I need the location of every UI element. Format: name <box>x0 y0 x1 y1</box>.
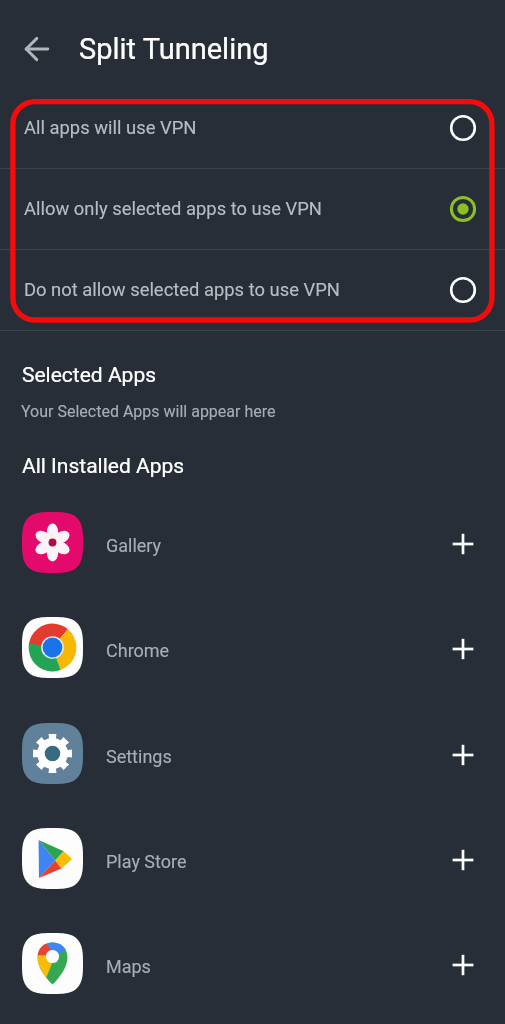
button[interactable]: Settings <box>0 701 505 806</box>
button[interactable]: Add Chrome <box>439 624 487 672</box>
button[interactable]: Add Play Store <box>439 835 487 883</box>
button[interactable]: Play Store <box>0 806 505 911</box>
button[interactable]: Maps <box>0 911 505 1016</box>
button[interactable]: Chrome <box>0 595 505 700</box>
button[interactable]: Allow only selected apps to use VPN <box>0 169 505 249</box>
button[interactable]: Do not allow selected apps to use VPN <box>0 250 505 330</box>
button[interactable]: Gallery <box>0 490 505 595</box>
staticText: All Installed Apps <box>22 454 185 479</box>
staticText: Maps <box>106 956 151 977</box>
button[interactable]: All apps will use VPN <box>0 88 505 168</box>
staticText: Selected Apps <box>22 363 157 388</box>
staticText: All apps will use VPN <box>24 117 197 139</box>
button[interactable]: Back <box>13 25 61 73</box>
button[interactable]: Add Gallery <box>439 519 487 567</box>
staticText: Gallery <box>106 535 162 556</box>
staticText: Your Selected Apps will appear here <box>21 402 276 421</box>
staticText: Split Tunneling <box>79 32 269 66</box>
button[interactable]: Add Maps <box>439 940 487 988</box>
button[interactable]: Add Settings <box>439 730 487 778</box>
staticText: Play Store <box>106 851 187 872</box>
staticText: Allow only selected apps to use VPN <box>24 198 322 220</box>
staticText: Settings <box>106 746 172 767</box>
staticText: Do not allow selected apps to use VPN <box>24 279 340 301</box>
staticText: Chrome <box>106 640 170 661</box>
